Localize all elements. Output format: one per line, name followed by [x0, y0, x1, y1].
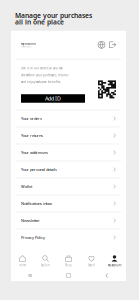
staticText: Your addresses	[21, 150, 48, 155]
button[interactable]: Recents	[11, 271, 49, 280]
button[interactable]: Home	[49, 271, 88, 280]
button[interactable]: Back	[88, 271, 126, 280]
button[interactable]: Your personal details	[11, 161, 126, 178]
button[interactable]: Shop	[57, 252, 80, 270]
button[interactable]: Notifications inbox	[11, 195, 126, 212]
staticText: Your returns	[21, 133, 43, 138]
staticText: streamline your purchases, returns	[21, 73, 68, 77]
staticText: Notifications inbox	[21, 201, 52, 206]
staticText: My account	[107, 263, 121, 267]
staticText: My account	[21, 42, 36, 45]
staticText: Shop	[65, 263, 72, 267]
button[interactable]: Privacy Policy	[11, 229, 126, 246]
staticText: Your personal details	[21, 167, 57, 172]
button[interactable]: Your returns	[11, 127, 126, 144]
button[interactable]: Newsletter	[11, 212, 126, 229]
staticText: Add ID	[45, 95, 61, 102]
button[interactable]: Change language	[98, 41, 105, 48]
staticText: Use it in our stores so you can	[21, 66, 63, 70]
staticText: Saved	[88, 263, 95, 267]
staticText: Newsletter	[21, 218, 40, 223]
button[interactable]: Home	[11, 252, 34, 270]
staticText: hello@email.com	[21, 46, 31, 48]
staticText: all in one place	[15, 17, 64, 26]
button[interactable]: Wallet	[11, 178, 126, 195]
button[interactable]: Your addresses	[11, 144, 126, 161]
staticText: Privacy Policy	[21, 235, 45, 240]
staticText: Manage your purchases	[15, 11, 92, 20]
button[interactable]: Add ID	[21, 94, 85, 103]
staticText: Explore	[40, 263, 50, 267]
button[interactable]: Saved	[80, 252, 103, 270]
staticText: Wallet	[21, 184, 32, 189]
staticText: Home	[18, 263, 26, 267]
button[interactable]: My account	[103, 252, 126, 270]
staticText: and enjoy exclusive benefits.	[21, 80, 61, 84]
button[interactable]: Explore	[34, 252, 57, 270]
staticText: Your orders	[21, 116, 42, 121]
button[interactable]: Sign out	[105, 41, 116, 48]
button[interactable]: Your orders	[11, 110, 126, 127]
